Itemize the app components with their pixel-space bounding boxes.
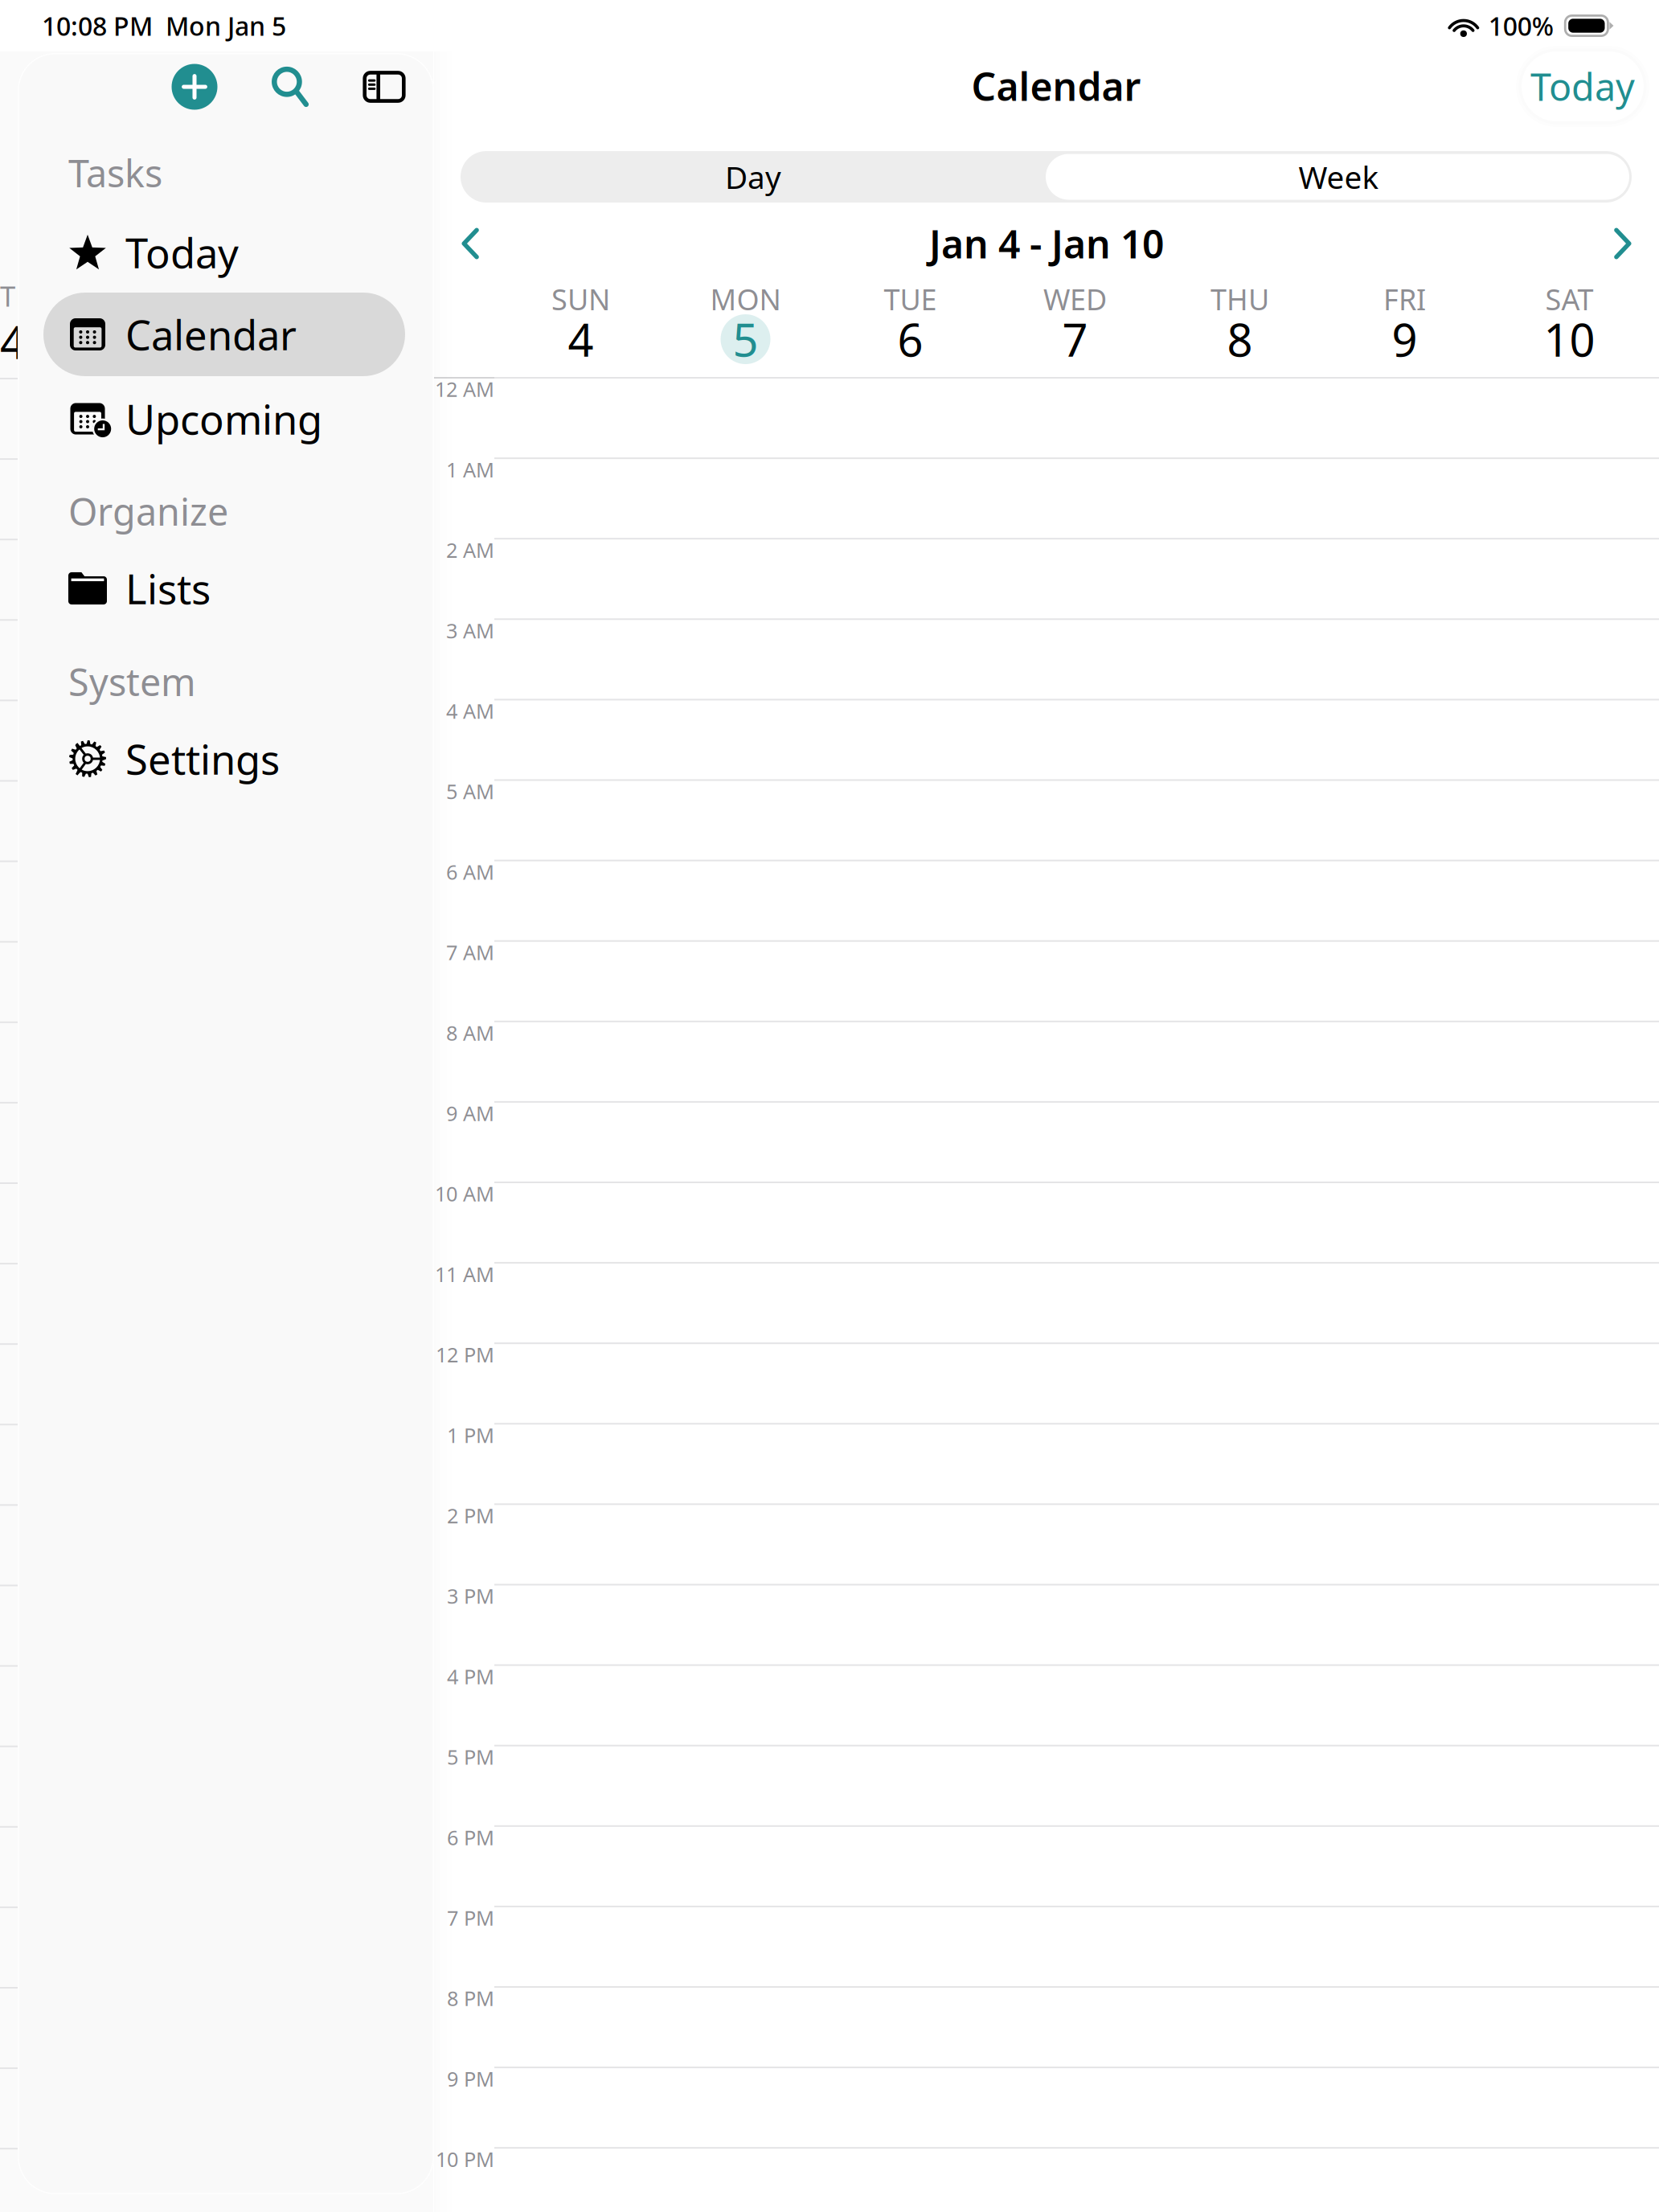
staticText: MON [710,280,781,318]
staticText: TUE [884,280,937,318]
staticText: 12 PM [436,1341,494,1368]
staticText: Lists [125,561,211,615]
button[interactable]: Hide sidebar [337,55,432,119]
staticText: 4 [0,312,26,372]
staticText: 2 PM [447,1502,494,1529]
staticText: THU [1210,280,1269,318]
staticText: 2 AM [446,536,494,563]
button[interactable]: Search [242,55,337,119]
button[interactable]: TUE [828,285,993,366]
staticText: Today [1530,61,1635,111]
button[interactable]: Today [43,211,405,294]
staticText: FRI [1383,280,1426,318]
staticText: 9 PM [447,2065,494,2092]
staticText: 7 [1062,309,1088,369]
staticText: System [68,657,196,707]
staticText: THU [0,277,56,314]
button[interactable]: New task [147,55,242,119]
staticText: 100% [1488,9,1554,43]
button[interactable]: WED [993,285,1157,366]
staticText: Tasks [68,148,162,198]
button[interactable]: Week [1046,151,1632,203]
staticText: 8 [1227,309,1253,369]
staticText: SAT [1545,280,1593,318]
staticText: 6 PM [447,1824,494,1851]
staticText: 4 AM [446,697,494,724]
button[interactable]: FRI [1322,285,1487,366]
button[interactable]: Upcoming [43,377,405,461]
staticText: 12 AM [435,376,494,403]
staticText: 1 AM [446,456,494,483]
staticText: 6 [897,309,923,369]
staticText: 7 AM [446,939,494,966]
button[interactable]: SAT [1487,285,1652,366]
staticText: Upcoming [125,392,322,446]
button[interactable]: Day [461,151,1046,203]
staticText: Calendar [125,307,297,361]
staticText: 1 PM [447,1421,494,1448]
staticText: Calendar [971,60,1141,112]
button[interactable]: THU [1157,285,1322,366]
staticText: Day [725,156,781,197]
staticText: 3 AM [446,617,494,644]
staticText: Organize [68,486,228,536]
staticText: 8 PM [447,1985,494,2012]
staticText: 10:08 PM [42,9,153,43]
button[interactable]: Today [1518,47,1648,125]
button[interactable]: MON [663,285,828,366]
staticText: Today [125,225,239,279]
button[interactable]: Previous week [436,215,506,272]
button[interactable]: Next week [1587,215,1657,272]
button[interactable]: Calendar [43,293,405,376]
staticText: Week [1299,156,1379,197]
staticText: 10 [1544,309,1595,369]
staticText: 3 PM [447,1582,494,1609]
staticText: Jan 4 - Jan 10 [929,218,1164,269]
staticText: 6 AM [446,858,494,885]
staticText: SUN [551,280,610,318]
staticText: 5 AM [446,778,494,805]
staticText: 4 PM [447,1663,494,1690]
staticText: Settings [125,732,280,786]
staticText: Mon Jan 5 [166,9,286,43]
staticText: 8 AM [446,1019,494,1046]
staticText: WED [1043,280,1107,318]
staticText: 11 AM [435,1261,494,1288]
button[interactable]: Settings [43,717,405,801]
button[interactable]: SUN [498,285,663,366]
staticText: 10 AM [435,1180,494,1207]
staticText: 9 AM [446,1100,494,1127]
staticText: 4 [568,309,594,369]
staticText: 5 [733,309,758,369]
button[interactable]: Lists [43,547,405,630]
staticText: 7 PM [447,1904,494,1931]
staticText: 9 [1392,309,1417,369]
staticText: 10 PM [436,2146,494,2173]
staticText: 5 PM [447,1743,494,1770]
